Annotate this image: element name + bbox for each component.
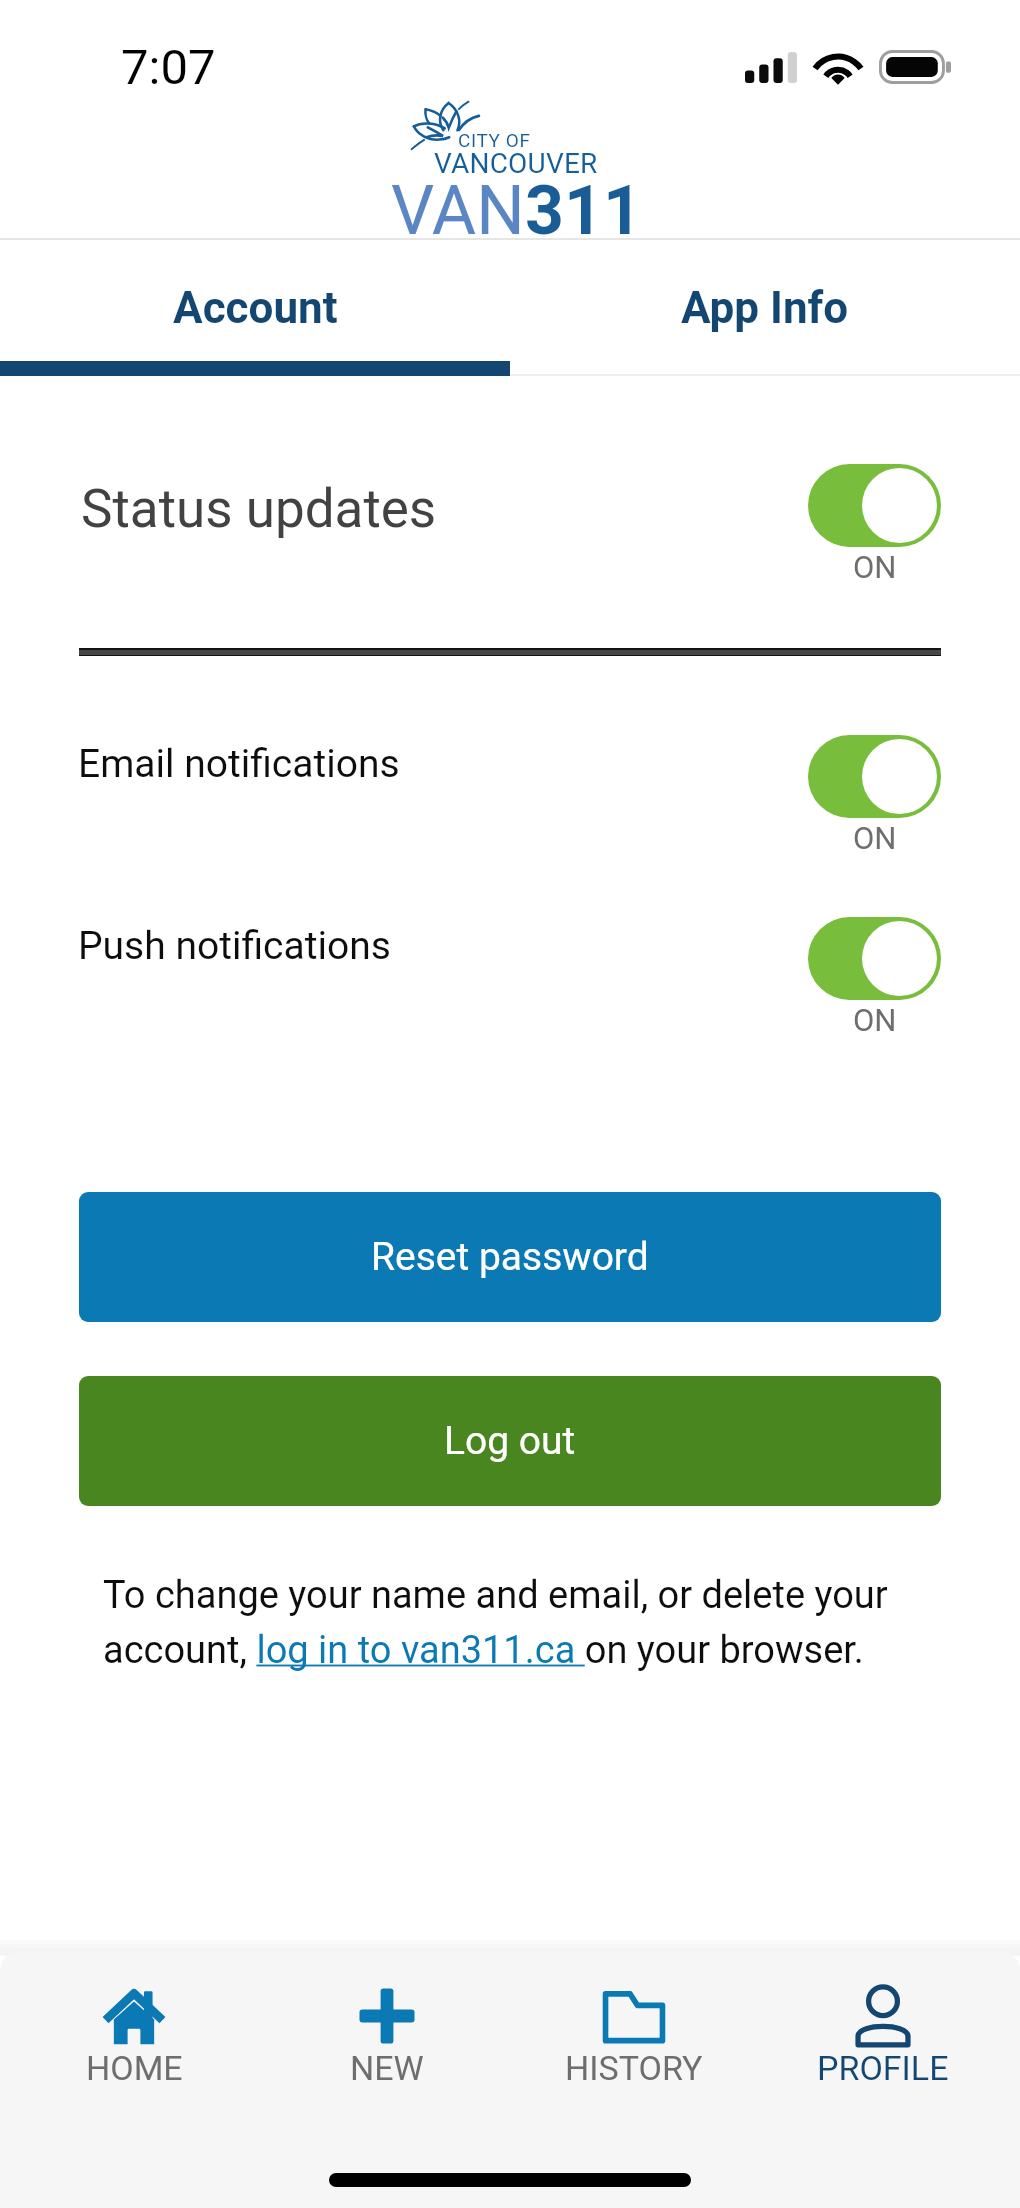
button[interactable]: Status updates: [79, 479, 579, 549]
staticText: App Info: [681, 282, 849, 334]
button[interactable]: History: [514, 1984, 754, 2088]
staticText: HISTORY: [565, 2048, 703, 2088]
button[interactable]: Account: [0, 240, 510, 376]
staticText: 311: [525, 171, 643, 251]
staticText: NEW: [350, 2048, 424, 2088]
button[interactable]: Push notifications: [78, 923, 578, 973]
button[interactable]: New request: [267, 1984, 507, 2088]
staticText: VANCOUVER: [434, 147, 598, 180]
button[interactable]: App Info: [510, 240, 1020, 376]
staticText: ON: [853, 820, 897, 856]
button[interactable]: Status updates toggle, on: [808, 464, 941, 547]
staticText: HOME: [86, 2048, 183, 2088]
button[interactable]: Status updates toggle, on: [808, 735, 941, 818]
staticText: VAN: [391, 171, 525, 251]
staticText: PROFILE: [817, 2048, 949, 2088]
staticText: To change your name and email, or delete…: [103, 1573, 949, 1672]
staticText: ON: [853, 549, 897, 585]
staticText: Status updates: [81, 478, 437, 540]
staticText: Push notifications: [78, 923, 391, 969]
button[interactable]: Status updates toggle, on: [808, 917, 941, 1000]
staticText: CITY OF: [458, 129, 531, 151]
button[interactable]: Reset password: [79, 1192, 941, 1322]
staticText: Log out: [444, 1418, 576, 1464]
button[interactable]: Log out: [79, 1376, 941, 1506]
button[interactable]: Profile: [763, 1984, 1003, 2088]
button[interactable]: Email notifications: [78, 741, 578, 791]
staticText: Reset password: [371, 1234, 649, 1280]
button[interactable]: Home: [14, 1984, 254, 2088]
staticText: Account: [173, 282, 338, 334]
staticText: Email notifications: [78, 741, 400, 787]
staticText: 7:07: [121, 39, 216, 96]
staticText: ON: [853, 1002, 897, 1038]
button[interactable]: To change your name and email, or delete…: [103, 1573, 949, 1672]
